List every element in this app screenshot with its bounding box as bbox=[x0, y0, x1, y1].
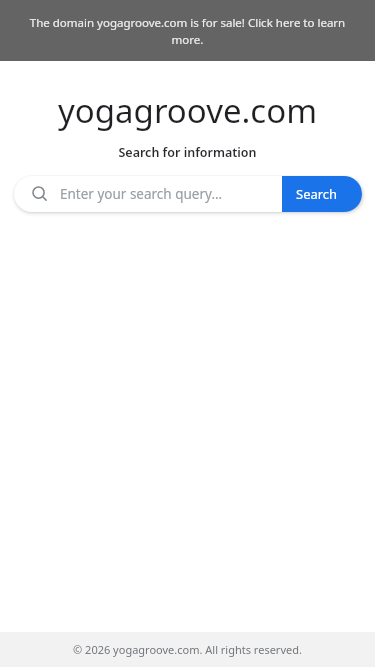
staticText: Search bbox=[296, 185, 338, 203]
staticText: © 2026 yogagroove.com. All rights reserv… bbox=[0, 642, 375, 657]
staticText: yogagroove.com bbox=[0, 88, 375, 133]
staticText: Enter your search query... bbox=[60, 185, 223, 203]
button[interactable]: The domain yogagroove.com is for sale! C… bbox=[0, 0, 375, 61]
other: Search bbox=[31, 185, 49, 203]
button[interactable]: Search bbox=[14, 176, 362, 212]
staticText: Search for information bbox=[0, 144, 375, 161]
button[interactable]: Search bbox=[282, 176, 362, 212]
staticText: The domain yogagroove.com is for sale! C… bbox=[18, 15, 357, 47]
